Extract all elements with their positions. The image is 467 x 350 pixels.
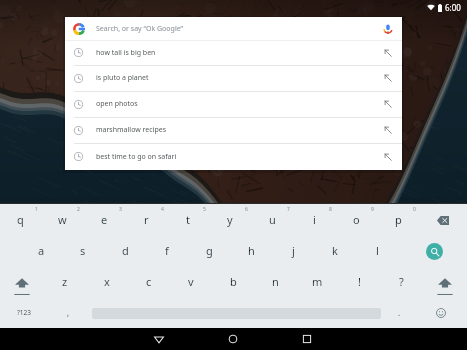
staticText: x [104, 274, 110, 289]
staticText: z [62, 274, 68, 289]
staticText: b [230, 274, 237, 289]
staticText: , [67, 307, 70, 318]
staticText: . [398, 307, 401, 318]
staticText: 4 [161, 206, 164, 213]
button[interactable]: t [167, 204, 209, 235]
button[interactable]: Insert suggestion [377, 42, 399, 64]
button[interactable]: e [83, 204, 125, 235]
button[interactable]: , [48, 297, 88, 328]
staticText: r [144, 212, 149, 227]
button[interactable]: y [209, 204, 251, 235]
button[interactable]: q [0, 204, 41, 235]
button[interactable]: how tall is big ben [65, 40, 402, 65]
button[interactable]: m [296, 266, 338, 297]
staticText: 3 [119, 206, 122, 213]
staticText: t [186, 212, 190, 227]
button[interactable]: a [20, 235, 62, 266]
staticText: v [188, 274, 194, 289]
button[interactable]: w [41, 204, 83, 235]
button[interactable]: best time to go on safari [65, 143, 402, 170]
staticText: 7 [287, 206, 290, 213]
button[interactable]: o [335, 204, 377, 235]
button[interactable]: Backspace [423, 204, 467, 235]
staticText: best time to go on safari [96, 152, 177, 162]
staticText: c [146, 274, 152, 289]
button[interactable]: f [146, 235, 188, 266]
staticText: p [395, 212, 402, 227]
staticText: q [17, 212, 24, 227]
button[interactable]: v [170, 266, 212, 297]
button[interactable]: c [128, 266, 170, 297]
button[interactable]: Voice search [377, 18, 399, 40]
staticText: how tall is big ben [96, 48, 156, 58]
staticText: l [376, 243, 379, 258]
button[interactable]: h [230, 235, 272, 266]
button[interactable]: d [104, 235, 146, 266]
button[interactable]: Home [208, 328, 258, 350]
staticText: j [292, 243, 295, 258]
button[interactable]: r [125, 204, 167, 235]
staticText: 1 [35, 206, 38, 213]
staticText: 6 [245, 206, 248, 213]
staticText: s [80, 243, 86, 258]
staticText: Search, or say “Ok Google” [96, 24, 184, 34]
button[interactable]: p [377, 204, 419, 235]
button[interactable]: open photos [65, 91, 402, 117]
staticText: ? [399, 274, 404, 289]
staticText: 8 [329, 206, 332, 213]
button[interactable]: Insert suggestion [377, 119, 399, 141]
staticText: f [165, 243, 169, 258]
button[interactable]: Back [134, 328, 184, 350]
staticText: i [313, 212, 316, 227]
staticText: h [248, 243, 255, 258]
button[interactable]: x [86, 266, 128, 297]
staticText: m [312, 274, 323, 289]
staticText: 6:00 [445, 2, 461, 13]
button[interactable]: n [254, 266, 296, 297]
button[interactable]: Shift [0, 266, 44, 297]
button[interactable]: Emoji [415, 297, 467, 328]
button[interactable]: ?123 [0, 297, 48, 328]
button[interactable]: ! [338, 266, 380, 297]
button[interactable]: k [314, 235, 356, 266]
button[interactable]: i [293, 204, 335, 235]
button[interactable]: l [356, 235, 398, 266]
staticText: e [101, 212, 108, 227]
staticText: y [227, 212, 233, 227]
staticText: 0 [413, 206, 416, 213]
staticText: g [206, 243, 213, 258]
staticText: is pluto a planet [96, 73, 149, 83]
staticText: marshmallow recipes [96, 125, 167, 135]
staticText: ! [358, 274, 361, 289]
button[interactable]: Search [412, 235, 456, 266]
staticText: k [332, 243, 338, 258]
button[interactable]: Recents [282, 328, 332, 350]
button[interactable]: b [212, 266, 254, 297]
staticText: o [353, 212, 360, 227]
button[interactable]: Insert suggestion [377, 146, 399, 168]
button[interactable]: s [62, 235, 104, 266]
button[interactable]: u [251, 204, 293, 235]
staticText: u [269, 212, 276, 227]
button[interactable]: j [272, 235, 314, 266]
staticText: w [58, 212, 67, 227]
staticText: 5 [203, 206, 206, 213]
button[interactable]: g [188, 235, 230, 266]
button[interactable]: is pluto a planet [65, 65, 402, 91]
staticText: d [122, 243, 129, 258]
staticText: ?123 [17, 308, 31, 317]
button[interactable]: Search, or say “Ok Google” [65, 17, 402, 40]
staticText: a [38, 243, 45, 258]
button[interactable]: z [44, 266, 86, 297]
staticText: 2 [77, 206, 80, 213]
button[interactable]: Shift [423, 266, 467, 297]
button[interactable]: Insert suggestion [377, 67, 399, 89]
button[interactable]: marshmallow recipes [65, 117, 402, 143]
button[interactable]: Space [88, 297, 383, 328]
staticText: 9 [371, 206, 374, 213]
button[interactable]: Insert suggestion [377, 93, 399, 115]
staticText: n [272, 274, 279, 289]
button[interactable]: ? [380, 266, 422, 297]
staticText: open photos [96, 99, 138, 109]
